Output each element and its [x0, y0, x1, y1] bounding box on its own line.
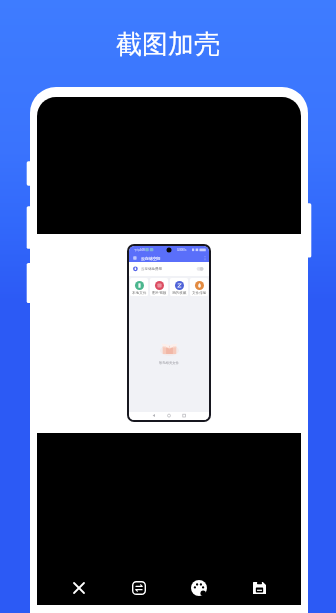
staticText: 下午4:09	[134, 248, 145, 252]
staticText: 文件传输	[192, 291, 207, 296]
button[interactable]: Close	[49, 571, 109, 605]
staticText: 截图加壳	[116, 28, 220, 61]
staticText: 0.00K/s	[177, 248, 187, 252]
staticText: 云存储免费用	[141, 267, 162, 271]
button[interactable]: Save	[229, 571, 289, 605]
staticText: 云存储空间	[141, 256, 161, 261]
staticText: 暂无相关文件	[159, 361, 179, 365]
staticText: 图片视频	[152, 291, 167, 296]
staticText: 本地文件	[132, 291, 147, 296]
staticText: 我的收藏	[172, 291, 187, 296]
button[interactable]: Change frame	[109, 571, 169, 605]
button[interactable]: Background colour	[169, 571, 229, 605]
